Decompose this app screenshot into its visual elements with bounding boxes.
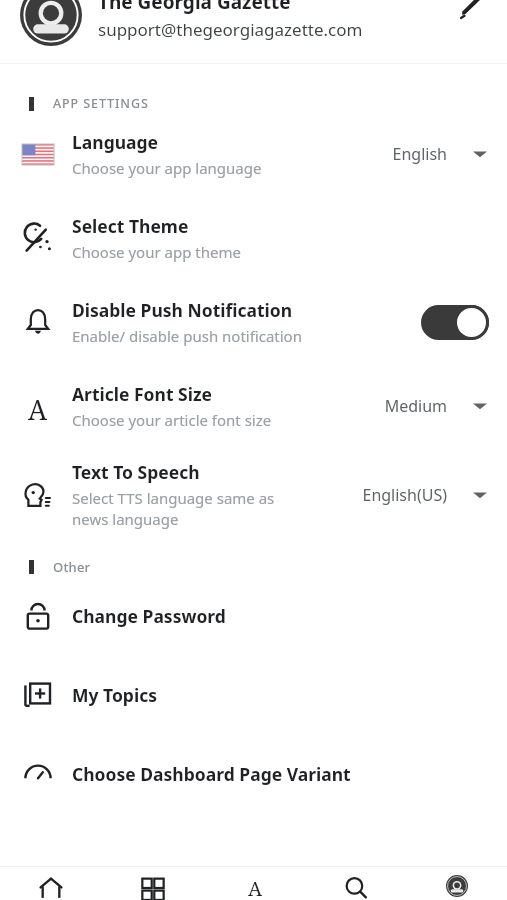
button[interactable]: Change Password (0, 576, 507, 655)
staticText: Choose Dashboard Page Variant (72, 762, 351, 786)
button[interactable]: Medium (384, 387, 489, 425)
staticText: APP SETTINGS (53, 95, 149, 112)
button[interactable]: Home (0, 867, 102, 900)
staticText: Medium (384, 395, 447, 417)
staticText: Disable Push Notification (72, 298, 293, 322)
staticText: Text To Speech (72, 460, 200, 484)
staticText: Article Font Size (72, 382, 213, 406)
button[interactable]: Language (0, 112, 507, 196)
button[interactable]: English (392, 135, 489, 173)
button[interactable]: Select Theme (0, 196, 507, 280)
staticText: Choose your article font size (72, 410, 272, 430)
staticText: English (392, 143, 447, 165)
button[interactable]: My Topics (0, 655, 507, 734)
staticText: The Georgia Gazette (98, 0, 291, 15)
button[interactable]: The Georgia Gazette (0, 0, 507, 62)
button[interactable]: A (0, 364, 507, 448)
button[interactable]: Search (305, 867, 406, 900)
staticText: Other (53, 558, 91, 576)
staticText: Change Password (72, 604, 226, 628)
button[interactable]: Push notification toggle (421, 305, 489, 340)
staticText: A (248, 875, 263, 899)
staticText: Choose your app theme (72, 242, 241, 262)
button[interactable]: Choose Dashboard Page Variant (0, 734, 507, 813)
staticText: Select Theme (72, 214, 189, 238)
staticText: Language (72, 130, 159, 154)
staticText: A (28, 391, 48, 421)
button[interactable]: Text To Speech (0, 448, 507, 542)
staticText: English(US) (362, 484, 447, 506)
button[interactable]: Font (204, 867, 305, 900)
button[interactable]: Categories (102, 867, 204, 900)
button[interactable]: Profile (406, 867, 507, 900)
staticText: Enable/ disable push notification (72, 326, 302, 346)
button[interactable]: Edit profile (453, 0, 493, 27)
staticText: Select TTS language same as news languag… (72, 488, 304, 530)
staticText: support@thegeorgiagazette.com (98, 18, 363, 41)
button[interactable]: Disable Push Notification (0, 280, 507, 364)
button[interactable]: English(US) (362, 476, 489, 514)
staticText: Choose your app language (72, 158, 262, 178)
staticText: My Topics (72, 683, 157, 707)
